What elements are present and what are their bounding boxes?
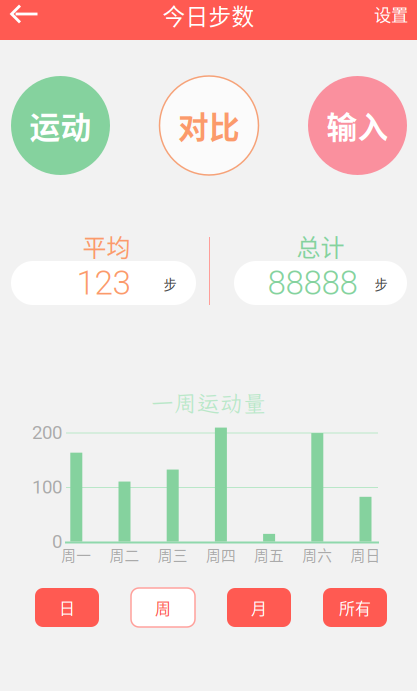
button[interactable]: 设置 (365, 0, 417, 34)
staticText: 对比 (178, 103, 240, 148)
staticText: 今日步数 (162, 0, 254, 31)
staticText: 一周运动量 (151, 388, 266, 418)
staticText: 设置 (374, 1, 408, 27)
button[interactable]: 所有 (323, 588, 387, 627)
staticText: 所有 (339, 596, 371, 619)
button[interactable]: Back (0, 0, 48, 40)
staticText: 周 (155, 596, 171, 619)
staticText: 输入 (326, 103, 388, 148)
staticText: 周五 (254, 544, 284, 565)
staticText: 步 (163, 274, 176, 294)
button[interactable]: 对比 (159, 76, 258, 175)
button[interactable]: 运动 (11, 76, 110, 175)
staticText: 100 (32, 476, 62, 498)
staticText: 88888 (267, 263, 357, 303)
button[interactable]: 周 (131, 588, 195, 627)
staticText: 123 (76, 263, 130, 303)
staticText: 周一 (61, 544, 91, 565)
button[interactable]: 输入 (308, 76, 407, 175)
staticText: 周三 (158, 544, 188, 565)
staticText: 运动 (29, 103, 91, 148)
staticText: 周二 (109, 544, 139, 565)
staticText: 总计 (296, 229, 344, 263)
staticText: 周六 (302, 544, 332, 565)
staticText: 日 (59, 596, 75, 619)
staticText: 周日 (350, 544, 380, 565)
staticText: 200 (32, 422, 62, 443)
staticText: 月 (251, 596, 267, 619)
button[interactable]: 月 (227, 588, 291, 627)
staticText: 周四 (206, 544, 236, 565)
staticText: 步 (374, 274, 387, 294)
staticText: 平均 (82, 229, 130, 263)
staticText: 0 (52, 531, 62, 552)
button[interactable]: 日 (35, 588, 99, 627)
